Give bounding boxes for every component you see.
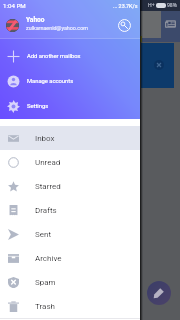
staticText: Settings [27, 103, 49, 110]
button[interactable]: Drafts [0, 198, 140, 222]
button[interactable]: Add another mailbox [0, 44, 140, 69]
button[interactable]: Unread [0, 150, 140, 174]
staticText: Yahoo [26, 16, 45, 24]
staticText: H+ [148, 2, 155, 9]
button[interactable]: Starred [0, 174, 140, 198]
staticText: 1:04 PM [3, 2, 26, 9]
staticText: Inbox [35, 134, 55, 143]
staticText: 98% [167, 2, 177, 9]
staticText: Starred [35, 182, 61, 191]
button[interactable]: Settings [0, 94, 140, 119]
staticText: Drafts [35, 206, 57, 215]
staticText: Archive [35, 254, 62, 263]
staticText: zulkarnaenid@yahoo.com [26, 25, 88, 31]
staticText: Trash [35, 302, 55, 311]
button[interactable]: Inbox [0, 126, 140, 150]
button[interactable]: Trash [0, 294, 140, 318]
staticText: ... 23.7K/s [113, 3, 138, 9]
button[interactable]: Sent [0, 222, 140, 246]
staticText: Sent [35, 230, 52, 239]
button[interactable]: Archive [0, 246, 140, 270]
button[interactable]: Close ad [154, 60, 164, 70]
staticText: Unread [35, 158, 61, 167]
staticText: Spam [35, 278, 56, 287]
button[interactable]: News [165, 19, 176, 28]
button[interactable]: Manage accounts [0, 69, 140, 94]
button[interactable]: Account key [116, 17, 132, 33]
staticText: Manage accounts [27, 78, 74, 85]
button[interactable]: Spam [0, 270, 140, 294]
staticText: Add another mailbox [27, 53, 81, 60]
button[interactable]: Compose [147, 281, 171, 305]
button[interactable]: Yahoo [0, 11, 140, 38]
